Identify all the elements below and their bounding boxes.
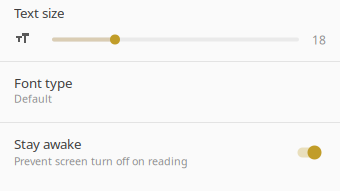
staticText: Stay awake [14, 135, 82, 153]
button[interactable]: Text size [14, 25, 326, 51]
staticText: Font type [14, 74, 73, 92]
staticText: 18 [312, 32, 326, 48]
staticText: Prevent screen turn off on reading [14, 154, 188, 168]
staticText: Default [14, 91, 52, 106]
button[interactable]: Stay awake [0, 123, 340, 185]
staticText: Text size [14, 4, 65, 22]
button[interactable]: Font type [0, 62, 340, 122]
